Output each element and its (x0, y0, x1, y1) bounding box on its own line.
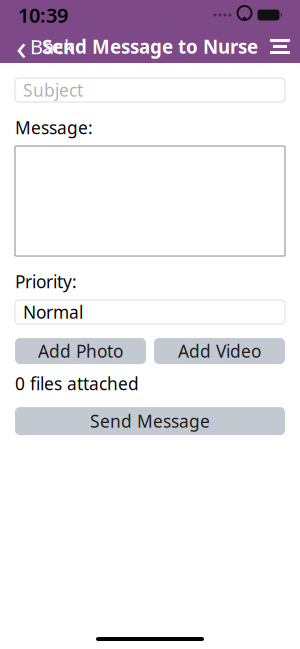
staticText: Send Message (90, 409, 210, 432)
button[interactable]: Normal (15, 300, 285, 324)
staticText: ‹ (16, 23, 27, 69)
button[interactable]: Add Photo (15, 338, 146, 364)
button[interactable]: Add Video (154, 338, 285, 364)
staticText: Send Message to Nurse (42, 34, 258, 59)
button[interactable]: Menu (268, 30, 292, 63)
staticText: 10:39 (18, 2, 68, 28)
button[interactable]: ‹ (8, 30, 83, 63)
staticText: Subject (23, 78, 83, 101)
button[interactable] (15, 146, 285, 256)
staticText: Add Photo (38, 339, 123, 362)
staticText: Normal (23, 300, 83, 323)
staticText: Message: (15, 116, 93, 139)
staticText: Priority: (15, 270, 77, 293)
button[interactable]: Subject (15, 78, 285, 102)
staticText: 0 files attached (15, 372, 139, 395)
button[interactable]: Send Message (15, 407, 285, 435)
staticText: Add Video (178, 339, 261, 362)
staticText: Back (30, 33, 75, 60)
